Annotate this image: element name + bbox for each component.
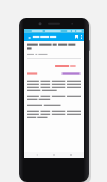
button[interactable]: Bookmark (73, 33, 79, 41)
button[interactable]: Back (33, 152, 41, 158)
button[interactable]: Home (50, 152, 58, 158)
button[interactable] (32, 33, 73, 41)
button[interactable] (61, 72, 81, 75)
button[interactable]: Back (26, 34, 32, 41)
button[interactable]: More options (79, 33, 84, 41)
button[interactable]: Recent apps (67, 152, 75, 158)
